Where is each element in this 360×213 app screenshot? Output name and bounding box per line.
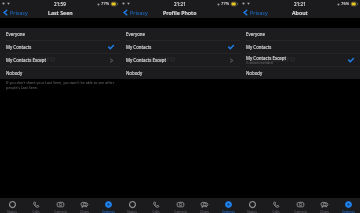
staticText: Privacy (130, 9, 148, 16)
button[interactable]: Everyone (240, 28, 360, 40)
button[interactable]: Chats (72, 198, 96, 213)
staticText: My Contacts (246, 44, 272, 50)
staticText: Camera (54, 209, 67, 213)
staticText: My Contacts Except (246, 55, 287, 61)
staticText: Nobody (126, 70, 143, 76)
staticText: Camera (174, 209, 187, 213)
staticText: Status (127, 209, 137, 213)
button[interactable]: My Contacts Except (0, 54, 120, 66)
staticText: Profile Photo (163, 9, 197, 16)
staticText: 21:21 (294, 1, 306, 7)
staticText: My Contacts Except (126, 57, 167, 63)
button[interactable]: Calls (144, 198, 168, 213)
button[interactable]: My Contacts (0, 41, 120, 53)
button[interactable]: Nobody (120, 67, 240, 79)
button[interactable]: Chats (192, 198, 216, 213)
staticText: If you don't share your Last Seen, you w… (6, 80, 117, 90)
staticText: 76% (341, 1, 350, 7)
staticText: My Contacts (126, 44, 152, 50)
staticText: 77% (221, 1, 230, 7)
staticText: Nobody (6, 70, 23, 76)
staticText: Settings (342, 209, 355, 213)
button[interactable]: Camera (48, 198, 72, 213)
button[interactable]: Camera (288, 198, 312, 213)
button[interactable]: Status (0, 198, 24, 213)
staticText: WABETAINFO (130, 55, 176, 64)
button[interactable]: Everyone (120, 28, 240, 40)
staticText: WABETAINFO (250, 55, 296, 64)
staticText: About (292, 9, 308, 16)
staticText: Privacy (250, 9, 268, 16)
button[interactable]: Status (240, 198, 264, 213)
staticText: Chats (80, 209, 89, 213)
staticText: Everyone (126, 31, 146, 37)
button[interactable]: Status (120, 198, 144, 213)
staticText: 21:21 (174, 1, 186, 7)
staticText: Calls (152, 209, 160, 213)
staticText: Settings (102, 209, 115, 213)
button[interactable]: Calls (264, 198, 288, 213)
button[interactable]: Camera (168, 198, 192, 213)
staticText: Privacy (10, 9, 28, 16)
staticText: My Contacts Except (6, 57, 47, 63)
button[interactable]: Everyone (0, 28, 120, 40)
staticText: Nobody (246, 70, 263, 76)
staticText: 0 contacts excluded (246, 61, 273, 65)
staticText: Calls (272, 209, 280, 213)
staticText: Status (247, 209, 257, 213)
staticText: Last Seen (48, 9, 73, 16)
button[interactable]: Privacy (2, 9, 28, 16)
staticText: Status (7, 209, 17, 213)
button[interactable]: Privacy (122, 9, 148, 16)
button[interactable]: My Contacts (240, 41, 360, 53)
button[interactable]: Nobody (240, 67, 360, 79)
button[interactable]: Nobody (0, 67, 120, 79)
staticText: Chats (200, 209, 209, 213)
staticText: Camera (294, 209, 307, 213)
staticText: Calls (32, 209, 40, 213)
staticText: 77% (101, 1, 110, 7)
button[interactable]: Settings (216, 198, 240, 213)
staticText: Everyone (6, 31, 26, 37)
staticText: Settings (222, 209, 235, 213)
staticText: WABETAINFO (10, 55, 56, 64)
button[interactable]: Privacy (242, 9, 268, 16)
staticText: My Contacts (6, 44, 32, 50)
button[interactable]: My Contacts Except (240, 54, 360, 66)
staticText: Chats (320, 209, 329, 213)
button[interactable]: My Contacts Except (120, 54, 240, 66)
button[interactable]: Settings (336, 198, 360, 213)
button[interactable]: My Contacts (120, 41, 240, 53)
staticText: Everyone (246, 31, 266, 37)
button[interactable]: Chats (312, 198, 336, 213)
staticText: 21:59 (54, 1, 66, 7)
button[interactable]: Settings (96, 198, 120, 213)
button[interactable]: Calls (24, 198, 48, 213)
